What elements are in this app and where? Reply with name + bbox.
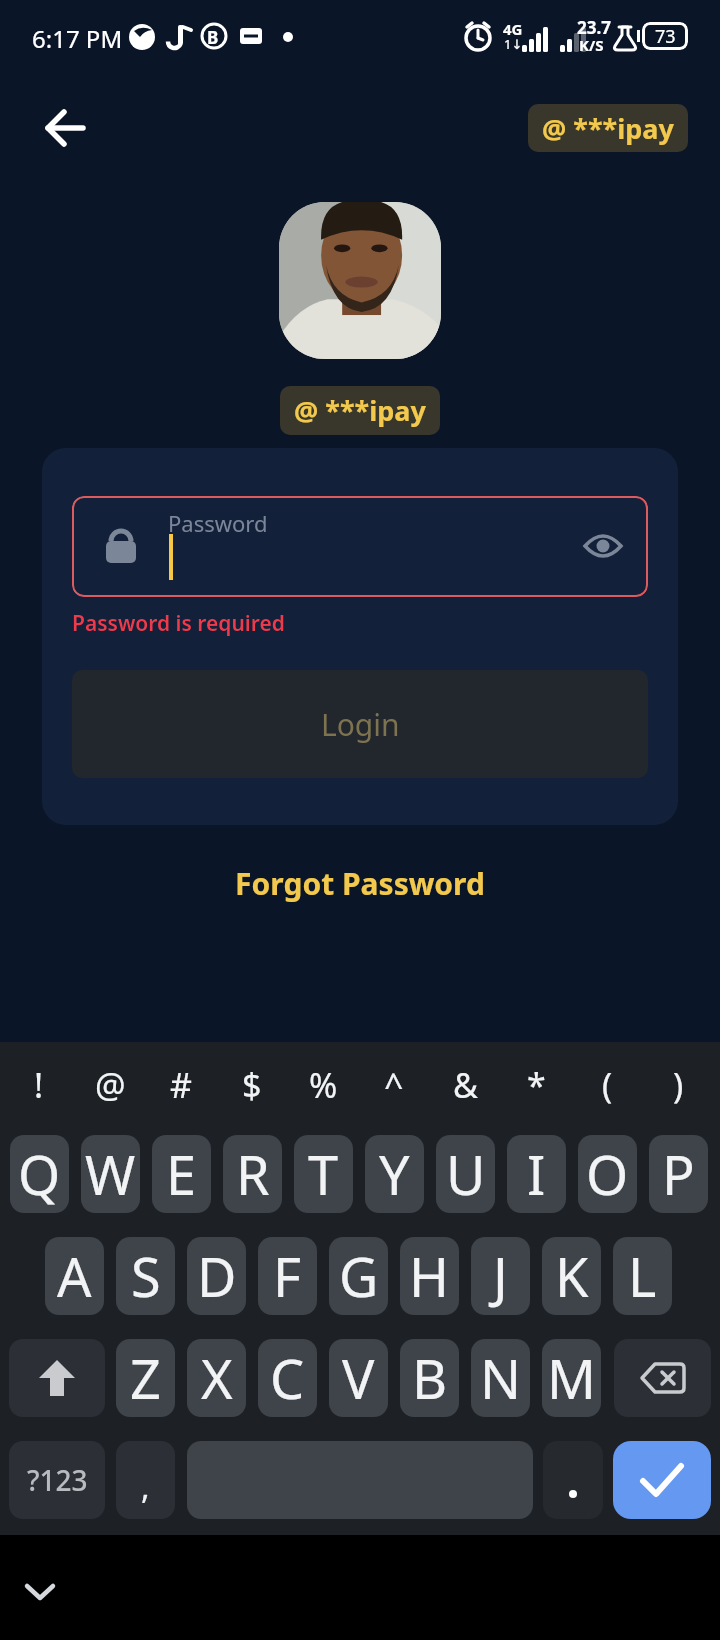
staticText: N bbox=[480, 1341, 522, 1415]
staticText: K bbox=[555, 1239, 589, 1313]
staticText: H bbox=[409, 1239, 450, 1313]
button[interactable]: * bbox=[505, 1060, 567, 1110]
staticText: U bbox=[446, 1137, 486, 1211]
button[interactable]: Q bbox=[10, 1135, 69, 1213]
button[interactable]: ^ bbox=[363, 1060, 425, 1110]
button[interactable]: ?123 bbox=[9, 1441, 105, 1519]
staticText: K/S bbox=[579, 35, 604, 55]
staticText: C bbox=[270, 1341, 305, 1415]
staticText: ( bbox=[602, 1062, 613, 1108]
button[interactable]: ( bbox=[576, 1060, 638, 1110]
staticText: M bbox=[547, 1341, 596, 1415]
staticText: R bbox=[236, 1137, 270, 1211]
button[interactable]: H bbox=[400, 1237, 459, 1315]
staticText: W bbox=[85, 1137, 136, 1211]
button[interactable]: E bbox=[152, 1135, 211, 1213]
staticText: 23.7 bbox=[577, 16, 611, 39]
staticText: & bbox=[453, 1062, 478, 1108]
button[interactable]: B bbox=[400, 1339, 459, 1417]
staticText: @ bbox=[95, 1062, 126, 1108]
button[interactable]: R bbox=[223, 1135, 282, 1213]
button[interactable]: V bbox=[329, 1339, 388, 1417]
staticText: % bbox=[309, 1062, 338, 1108]
staticText: Y bbox=[379, 1137, 410, 1211]
staticText: I bbox=[527, 1137, 546, 1211]
button[interactable]: Z bbox=[116, 1339, 175, 1417]
button[interactable]: P bbox=[649, 1135, 708, 1213]
staticText: ) bbox=[673, 1062, 684, 1108]
button[interactable]: Password bbox=[72, 496, 648, 597]
staticText: @ ***ipay bbox=[542, 110, 674, 147]
staticText: A bbox=[57, 1239, 92, 1313]
button[interactable]: J bbox=[471, 1237, 530, 1315]
staticText: Password bbox=[168, 508, 268, 538]
staticText: T bbox=[308, 1137, 339, 1211]
staticText: Q bbox=[18, 1137, 61, 1211]
button[interactable]: $ bbox=[221, 1060, 283, 1110]
button[interactable]: C bbox=[258, 1339, 317, 1417]
button[interactable]: O bbox=[578, 1135, 637, 1213]
button[interactable]: @ ***ipay bbox=[528, 104, 688, 152]
staticText: J bbox=[493, 1239, 508, 1313]
button[interactable]: W bbox=[81, 1135, 140, 1213]
button[interactable]: S bbox=[116, 1237, 175, 1315]
button[interactable] bbox=[543, 1441, 603, 1519]
button[interactable]: G bbox=[329, 1237, 388, 1315]
staticText: B bbox=[412, 1341, 448, 1415]
button[interactable]: N bbox=[471, 1339, 530, 1417]
staticText: V bbox=[342, 1341, 375, 1415]
staticText: S bbox=[131, 1239, 161, 1313]
staticText: ?123 bbox=[27, 1461, 88, 1499]
button[interactable]: Y bbox=[365, 1135, 424, 1213]
staticText: , bbox=[141, 1465, 150, 1509]
button[interactable]: ) bbox=[647, 1060, 709, 1110]
staticText: $ bbox=[242, 1062, 262, 1108]
button[interactable] bbox=[16, 1568, 64, 1616]
button[interactable]: @ ***ipay bbox=[280, 386, 440, 435]
button[interactable] bbox=[614, 1339, 711, 1417]
staticText: F bbox=[273, 1239, 302, 1313]
staticText: 1↓ bbox=[504, 35, 523, 53]
button[interactable]: % bbox=[292, 1060, 354, 1110]
button[interactable]: K bbox=[542, 1237, 601, 1315]
button[interactable]: F bbox=[258, 1237, 317, 1315]
staticText: 4G bbox=[503, 19, 523, 39]
staticText: @ ***ipay bbox=[294, 392, 426, 429]
button[interactable]: Login bbox=[72, 670, 648, 778]
button[interactable]: L bbox=[613, 1237, 672, 1315]
staticText: O bbox=[586, 1137, 629, 1211]
button[interactable]: A bbox=[45, 1237, 104, 1315]
button[interactable]: T bbox=[294, 1135, 353, 1213]
staticText: * bbox=[527, 1062, 546, 1108]
button[interactable]: I bbox=[507, 1135, 566, 1213]
button[interactable]: X bbox=[187, 1339, 246, 1417]
staticText: G bbox=[339, 1239, 379, 1313]
staticText: B bbox=[207, 26, 219, 49]
button[interactable]: , bbox=[116, 1441, 175, 1519]
staticText: E bbox=[166, 1137, 197, 1211]
staticText: D bbox=[197, 1239, 237, 1313]
staticText: P bbox=[662, 1137, 695, 1211]
button[interactable] bbox=[37, 100, 93, 156]
button[interactable]: Forgot Password bbox=[0, 863, 720, 904]
staticText: # bbox=[170, 1062, 192, 1108]
staticText: 6:17 PM bbox=[32, 22, 123, 55]
button[interactable]: # bbox=[150, 1060, 212, 1110]
staticText: X bbox=[201, 1341, 233, 1415]
staticText: Password is required bbox=[72, 609, 285, 638]
button[interactable] bbox=[613, 1441, 711, 1519]
button[interactable]: D bbox=[187, 1237, 246, 1315]
staticText: Login bbox=[321, 704, 400, 745]
button[interactable]: @ bbox=[79, 1060, 141, 1110]
button[interactable]: & bbox=[434, 1060, 496, 1110]
staticText: ! bbox=[34, 1062, 44, 1108]
button[interactable]: U bbox=[436, 1135, 495, 1213]
button[interactable]: ! bbox=[8, 1060, 70, 1110]
staticText: L bbox=[628, 1239, 657, 1313]
staticText: Z bbox=[130, 1341, 161, 1415]
staticText: ^ bbox=[384, 1062, 404, 1108]
button[interactable] bbox=[9, 1339, 105, 1417]
staticText: 73 bbox=[655, 24, 676, 49]
button[interactable]: M bbox=[542, 1339, 601, 1417]
